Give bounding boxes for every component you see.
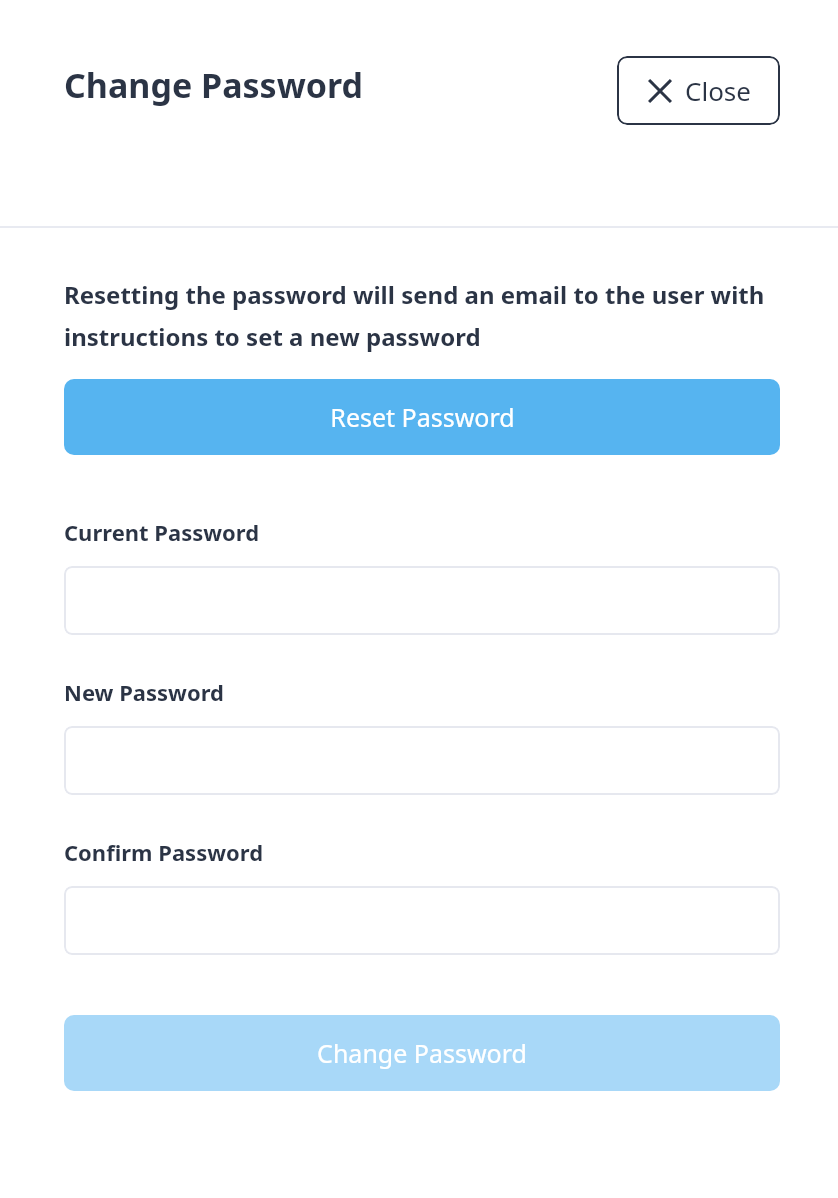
button[interactable]: Password input	[64, 566, 780, 635]
staticText: Change Password	[64, 62, 363, 108]
staticText: Close	[685, 73, 751, 108]
button[interactable]: Reset Password	[64, 379, 780, 455]
staticText: Resetting the password will send an emai…	[64, 278, 780, 353]
staticText: Reset Password	[330, 400, 515, 434]
button[interactable]: Close	[617, 56, 780, 125]
button[interactable]: Password input	[64, 726, 780, 795]
staticText: Confirm Password	[64, 837, 264, 867]
button[interactable]: Password input	[64, 886, 780, 955]
staticText: Change Password	[317, 1036, 527, 1070]
button[interactable]: Change Password	[64, 1015, 780, 1091]
staticText: New Password	[64, 677, 224, 707]
staticText: Current Password	[64, 517, 260, 547]
